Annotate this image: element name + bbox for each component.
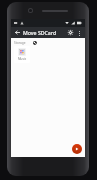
- button[interactable]: More options: [75, 29, 83, 37]
- button[interactable]: Navigate up: [13, 28, 22, 37]
- button[interactable]: Select all: [32, 40, 37, 45]
- staticText: Storage: [14, 41, 26, 45]
- staticText: Music: [15, 57, 29, 61]
- button[interactable]: Move files: [72, 144, 82, 154]
- button[interactable]: Settings: [66, 28, 75, 37]
- staticText: Move SDCard: [23, 29, 66, 36]
- button[interactable]: Music: [14, 46, 30, 63]
